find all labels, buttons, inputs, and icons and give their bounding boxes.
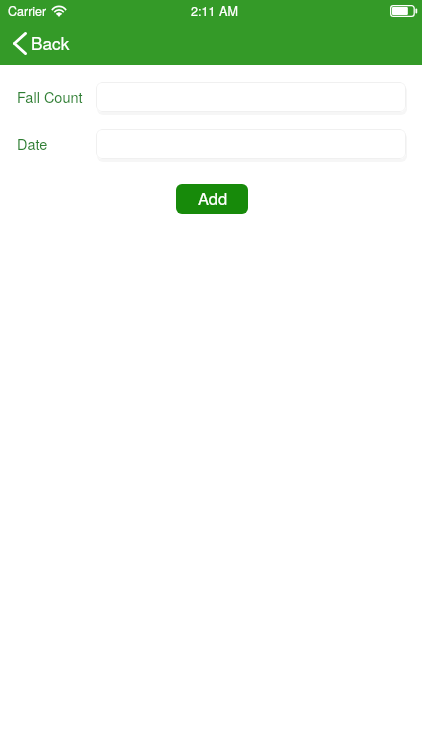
button[interactable]: Date input field — [96, 129, 406, 159]
staticText: Date — [17, 133, 48, 154]
staticText: Add — [198, 186, 228, 210]
staticText: Back — [31, 30, 70, 55]
staticText: 2:11 AM — [191, 2, 238, 20]
button[interactable]: Fall Count input field — [96, 82, 406, 112]
button[interactable]: Add — [176, 184, 248, 214]
button[interactable]: Back — [0, 24, 82, 65]
staticText: Fall Count — [17, 86, 83, 107]
other: Battery level — [390, 5, 417, 17]
other: Wi-Fi signal — [49, 4, 69, 17]
staticText: Carrier — [8, 2, 47, 20]
